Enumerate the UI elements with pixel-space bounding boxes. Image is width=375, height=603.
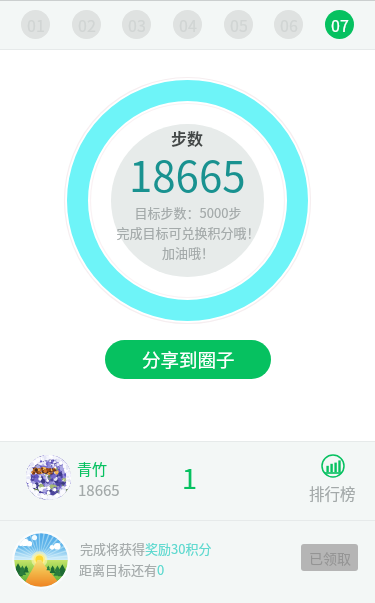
button[interactable]: 06 [274,10,303,39]
button[interactable]: 04 [173,10,202,39]
button[interactable]: 已领取 [301,544,358,571]
button[interactable]: 分享到圈子 [105,340,271,379]
staticText: 04 [179,13,197,36]
staticText: 1 [182,458,197,497]
staticText: 分享到圈子 [142,346,235,373]
staticText: 目标步数：5000步 完成目标可兑换积分哦！ 加油哦！ [116,203,260,262]
button[interactable]: 02 [72,10,101,39]
button[interactable]: 排行榜 [305,454,360,504]
staticText: 07 [331,13,349,36]
staticText: 已领取 [309,548,351,568]
staticText: 青竹 [77,458,108,480]
staticText: 18665 [78,479,120,501]
staticText: 01 [27,13,45,36]
staticText: 06 [280,13,298,36]
staticText: 步数 [171,126,204,149]
staticText: 05 [230,13,248,36]
button[interactable]: 07 [325,10,354,39]
button[interactable]: 青竹 [0,442,375,520]
staticText: 02 [78,13,96,36]
staticText: 排行榜 [309,482,356,504]
staticText: 18665 [129,143,246,204]
button[interactable]: 01 [21,10,50,39]
staticText: 03 [128,13,146,36]
button[interactable]: 03 [122,10,151,39]
staticText: 完成将获得奖励30积分 [80,539,212,558]
staticText: 距离目标还有0 [79,560,165,579]
button[interactable]: 完成将获得奖励30积分 [0,521,375,603]
button[interactable]: 05 [224,10,253,39]
